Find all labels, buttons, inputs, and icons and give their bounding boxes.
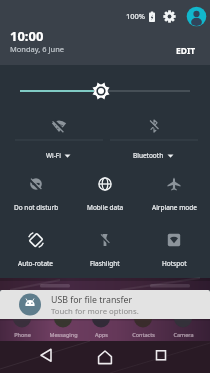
- staticText: 10:00: [10, 27, 44, 45]
- staticText: Monday, 6 June: [10, 44, 65, 54]
- button[interactable]: Auto-rotate: [5, 219, 67, 277]
- button[interactable]: [32, 343, 60, 371]
- staticText: 100%: [126, 11, 146, 21]
- staticText: Wi-Fi: [46, 151, 61, 160]
- button[interactable]: [147, 343, 175, 371]
- button[interactable]: [12, 78, 198, 104]
- button[interactable]: Airplane mode: [143, 163, 205, 221]
- staticText: Do not disturb: [14, 203, 59, 212]
- staticText: USB for file transfer: [51, 294, 133, 306]
- staticText: Messaging: [49, 331, 78, 338]
- staticText: Mobile data: [87, 203, 124, 212]
- staticText: Bluetooth: [133, 151, 164, 160]
- staticText: EDIT: [176, 45, 196, 57]
- staticText: Auto-rotate: [18, 259, 54, 268]
- staticText: Apps: [95, 331, 108, 338]
- button[interactable]: Bluetooth: [110, 105, 198, 163]
- staticText: Flashlight: [90, 259, 120, 268]
- button[interactable]: EDIT: [168, 42, 204, 60]
- staticText: Airplane mode: [152, 203, 197, 212]
- staticText: Contacts: [132, 331, 155, 338]
- button[interactable]: [161, 8, 178, 25]
- button[interactable]: USB for file transfer: [0, 290, 210, 319]
- button[interactable]: Wi-Fi: [15, 105, 103, 163]
- button[interactable]: Do not disturb: [5, 163, 67, 221]
- button[interactable]: [91, 343, 119, 371]
- staticText: Phone: [14, 331, 31, 338]
- button[interactable]: Flashlight: [74, 219, 136, 277]
- button[interactable]: Mobile data: [74, 163, 136, 221]
- button[interactable]: [187, 7, 206, 26]
- staticText: Touch for more options.: [51, 306, 139, 317]
- staticText: Hotspot: [162, 259, 187, 268]
- button[interactable]: Hotspot: [143, 219, 205, 277]
- staticText: Camera: [173, 331, 194, 338]
